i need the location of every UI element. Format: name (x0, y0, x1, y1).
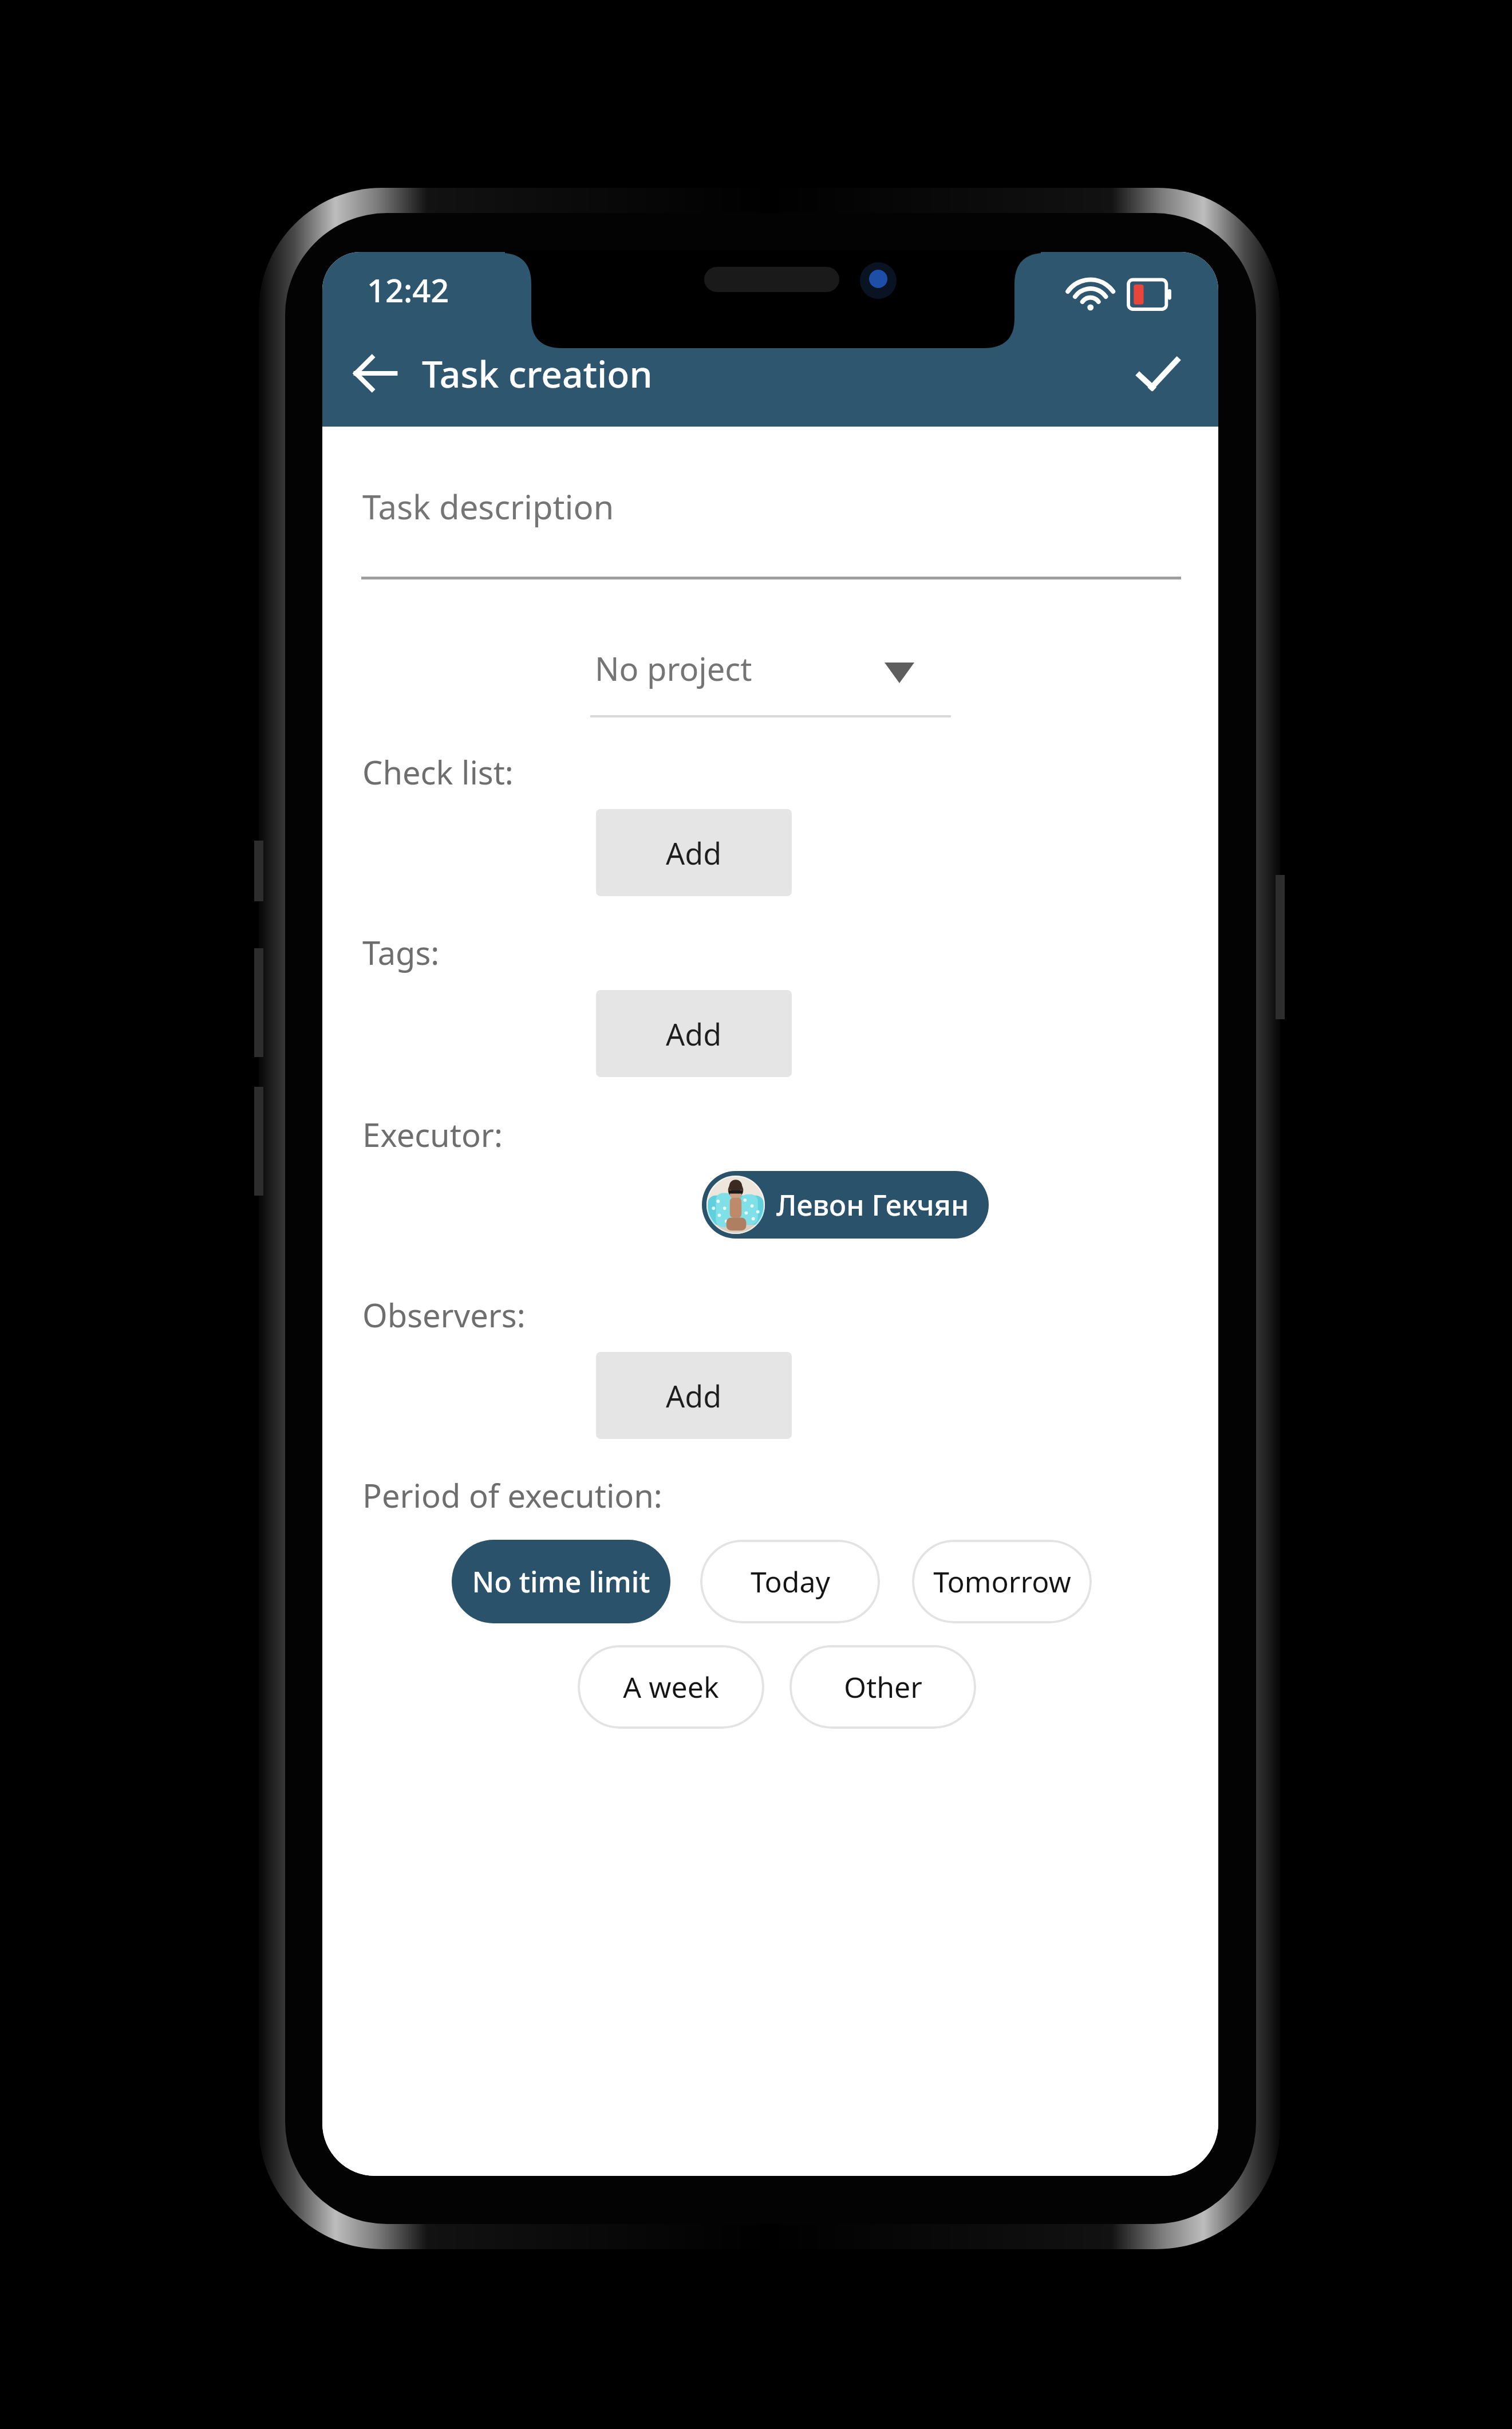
staticText: Task creation (422, 349, 653, 399)
staticText: Add (666, 833, 722, 873)
button[interactable]: No project (590, 634, 951, 719)
button[interactable]: Add (596, 809, 792, 896)
button[interactable]: Add (596, 1352, 792, 1439)
staticText: Period of execution: (362, 1473, 662, 1517)
staticText: Tags: (362, 930, 440, 974)
staticText: A week (623, 1667, 719, 1706)
staticText: No time limit (472, 1562, 650, 1601)
staticText: Task description (362, 484, 614, 529)
button[interactable]: Today (700, 1540, 880, 1623)
button[interactable]: No time limit (452, 1540, 670, 1623)
staticText: Check list: (362, 750, 514, 794)
staticText: Tomorrow (933, 1562, 1071, 1601)
staticText: Today (751, 1562, 830, 1601)
staticText: No project (595, 646, 752, 690)
button[interactable]: Other (789, 1645, 976, 1729)
button[interactable]: Tomorrow (912, 1540, 1092, 1623)
staticText: 12:42 (367, 268, 449, 311)
staticText: Add (666, 1375, 722, 1416)
button[interactable]: Save task (1122, 337, 1194, 409)
button[interactable]: A week (578, 1645, 764, 1729)
staticText: Левон Гекчян (776, 1185, 969, 1224)
staticText: Add (666, 1014, 722, 1054)
staticText: Other (844, 1667, 922, 1706)
button[interactable]: Левон Гекчян (702, 1171, 989, 1239)
button[interactable]: Add (596, 990, 792, 1077)
staticText: Executor: (362, 1113, 503, 1156)
button[interactable]: Back (339, 337, 412, 409)
staticText: Observers: (362, 1293, 526, 1336)
